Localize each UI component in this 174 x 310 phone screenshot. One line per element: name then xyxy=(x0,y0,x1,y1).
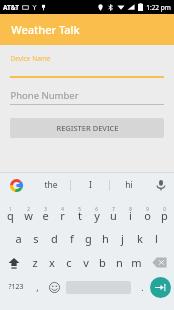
button[interactable]: hi xyxy=(110,172,148,198)
button[interactable]: Backspace xyxy=(145,253,173,272)
button[interactable]: h xyxy=(97,229,114,248)
button[interactable]: . xyxy=(134,276,150,298)
staticText: x xyxy=(49,255,55,270)
staticText: the xyxy=(44,179,58,191)
staticText: b xyxy=(99,255,106,270)
staticText: k xyxy=(137,231,143,246)
staticText: q xyxy=(7,208,14,223)
staticText: l xyxy=(155,231,158,246)
staticText: 6 xyxy=(95,206,98,212)
staticText: 9 xyxy=(146,206,149,212)
staticText: r xyxy=(60,208,65,223)
button[interactable]: I xyxy=(71,172,109,198)
staticText: 8 xyxy=(129,206,132,212)
staticText: ?123 xyxy=(8,282,24,292)
button[interactable]: Google xyxy=(0,172,32,198)
staticText: hi xyxy=(125,179,133,191)
button[interactable]: s xyxy=(27,229,45,248)
staticText: u xyxy=(110,208,117,223)
staticText: j xyxy=(121,231,124,246)
button[interactable]: n xyxy=(111,253,128,272)
staticText: 5 xyxy=(78,206,81,212)
staticText: . xyxy=(141,281,144,293)
staticText: d xyxy=(51,231,58,246)
staticText: w xyxy=(24,208,33,223)
button[interactable]: Shift xyxy=(1,253,26,272)
staticText: I xyxy=(89,179,92,191)
staticText: a xyxy=(15,231,22,246)
button[interactable]: a xyxy=(9,229,27,248)
button[interactable]: c xyxy=(60,253,77,272)
staticText: Phone Number xyxy=(10,89,79,102)
staticText: Weather Talk xyxy=(11,22,80,37)
staticText: c xyxy=(66,255,72,270)
staticText: i xyxy=(129,208,132,223)
staticText: 3 xyxy=(44,206,47,212)
button[interactable]: Phone Number xyxy=(10,89,164,102)
staticText: 4 xyxy=(61,206,64,212)
button[interactable]: the xyxy=(32,172,70,198)
button[interactable]: 5 xyxy=(71,202,88,224)
button[interactable]: ?123 xyxy=(3,276,29,298)
staticText: , xyxy=(36,281,39,293)
staticText: 0 xyxy=(163,206,166,212)
button[interactable]: 8 xyxy=(122,202,139,224)
button[interactable]: m xyxy=(128,253,145,272)
button[interactable]: 3 xyxy=(37,202,54,224)
button[interactable]: j xyxy=(114,229,131,248)
button[interactable]: 4 xyxy=(54,202,71,224)
button[interactable]: 9 xyxy=(139,202,156,224)
staticText: s xyxy=(33,231,39,246)
staticText: g xyxy=(85,231,92,246)
button[interactable]: Device Name xyxy=(10,54,164,76)
staticText: 7 xyxy=(112,206,115,212)
button[interactable]: REGISTER DEVICE xyxy=(10,118,164,138)
button[interactable]: v xyxy=(77,253,94,272)
staticText: 2 xyxy=(27,206,30,212)
staticText: m xyxy=(131,255,142,270)
staticText: 1:22 pm xyxy=(146,3,171,12)
button[interactable]: k xyxy=(131,229,148,248)
button[interactable]: f xyxy=(63,229,80,248)
staticText: f xyxy=(70,231,74,246)
staticText: AT&T xyxy=(3,3,19,12)
button[interactable]: g xyxy=(80,229,97,248)
staticText: REGISTER DEVICE xyxy=(56,123,119,133)
button[interactable]: z xyxy=(26,253,43,272)
button[interactable]: l xyxy=(148,229,165,248)
staticText: h xyxy=(102,231,109,246)
button[interactable]: Next xyxy=(150,277,171,298)
button[interactable]: d xyxy=(45,229,63,248)
button[interactable]: 2 xyxy=(19,202,37,224)
button[interactable]: 6 xyxy=(88,202,105,224)
staticText: y xyxy=(94,208,100,223)
staticText: n xyxy=(116,255,123,270)
staticText: e xyxy=(42,208,49,223)
staticText: Device Name xyxy=(10,54,51,63)
staticText: v xyxy=(83,255,89,270)
button[interactable]: Emoji xyxy=(45,276,63,298)
button[interactable]: x xyxy=(43,253,60,272)
staticText: p xyxy=(161,208,168,223)
button[interactable]: Voice input xyxy=(148,172,174,198)
button[interactable]: , xyxy=(29,276,45,298)
staticText: 1 xyxy=(9,206,12,212)
staticText: t xyxy=(78,208,82,223)
button[interactable]: 7 xyxy=(105,202,122,224)
button[interactable]: 1 xyxy=(1,202,19,224)
staticText: z xyxy=(32,255,38,270)
staticText: o xyxy=(144,208,151,223)
button[interactable]: b xyxy=(94,253,111,272)
button[interactable]: 0 xyxy=(156,202,173,224)
